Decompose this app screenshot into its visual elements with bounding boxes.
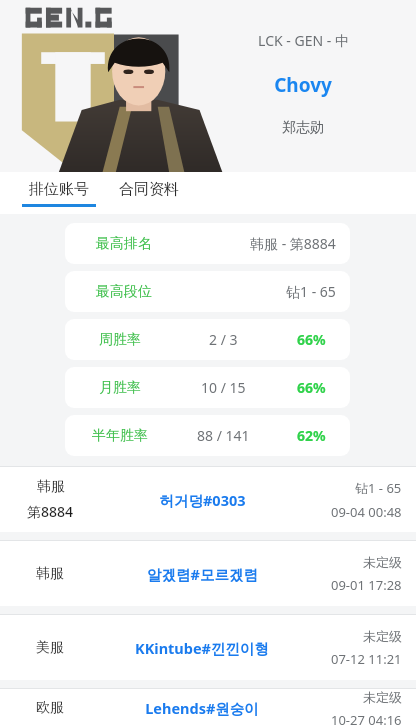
staticText: 66%: [297, 378, 326, 397]
staticText: 韩服: [37, 478, 65, 496]
staticText: 月胜率: [99, 379, 141, 397]
button[interactable]: 最高段位: [65, 271, 350, 312]
staticText: 郑志勋: [282, 119, 324, 137]
button[interactable]: 韩服: [0, 541, 416, 606]
staticText: 半年胜率: [92, 427, 148, 445]
staticText: 韩服: [36, 565, 64, 583]
staticText: 62%: [297, 426, 326, 445]
button[interactable]: 合同资料: [119, 180, 179, 206]
button[interactable]: 月胜率: [65, 367, 350, 408]
staticText: 未定级: [363, 554, 402, 570]
staticText: 最高段位: [96, 283, 152, 301]
button[interactable]: 排位账号: [21, 180, 97, 207]
staticText: 钻1 - 65: [355, 479, 402, 497]
staticText: 66%: [297, 330, 326, 349]
staticText: 88 / 141: [197, 426, 250, 445]
button[interactable]: 周胜率: [65, 319, 350, 360]
staticText: 알겠렴#모르겠렴: [147, 564, 258, 584]
button[interactable]: 最高排名: [65, 223, 350, 264]
staticText: 韩服 - 第8884: [250, 234, 336, 253]
staticText: 合同资料: [119, 180, 179, 199]
staticText: 第8884: [27, 502, 74, 521]
staticText: LCK - GEN - 中: [258, 31, 349, 50]
staticText: 最高排名: [96, 235, 152, 253]
staticText: 未定级: [363, 628, 402, 644]
staticText: 07-12 11:21: [331, 650, 402, 668]
staticText: 허거덩#0303: [159, 490, 246, 510]
button[interactable]: 韩服: [0, 467, 416, 532]
staticText: 10-27 04:16: [331, 711, 402, 727]
button[interactable]: 半年胜率: [65, 415, 350, 456]
staticText: 钻1 - 65: [286, 282, 336, 301]
staticText: 排位账号: [29, 180, 89, 199]
staticText: 周胜率: [99, 331, 141, 349]
button[interactable]: 欧服: [0, 689, 416, 727]
staticText: 09-04 00:48: [331, 503, 402, 521]
staticText: 欧服: [36, 699, 64, 717]
staticText: Chovy: [274, 72, 332, 98]
staticText: 2 / 3: [209, 330, 238, 349]
staticText: 未定级: [363, 689, 402, 705]
staticText: KKintube#낀낀이형: [135, 638, 269, 658]
staticText: 09-01 17:28: [331, 576, 402, 594]
staticText: 美服: [36, 639, 64, 657]
staticText: Lehends#원숭이: [145, 698, 259, 718]
staticText: 10 / 15: [201, 378, 246, 397]
button[interactable]: 美服: [0, 615, 416, 680]
